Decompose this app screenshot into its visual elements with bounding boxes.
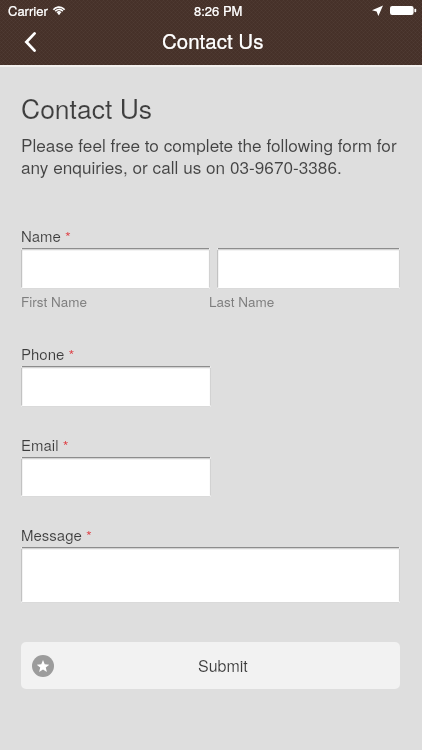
button[interactable] <box>21 457 211 497</box>
staticText: Submit <box>198 654 248 677</box>
button[interactable] <box>217 248 400 289</box>
staticText: Contact Us <box>162 25 264 54</box>
button[interactable]: Back <box>13 26 47 58</box>
staticText: Please feel free to complete the followi… <box>21 132 412 179</box>
staticText: 8:26 PM <box>194 1 243 20</box>
staticText: Email * <box>21 434 69 457</box>
staticText: First Name <box>21 292 87 311</box>
button[interactable] <box>21 366 211 407</box>
staticText: Phone * <box>21 343 75 366</box>
button[interactable]: Submit <box>21 642 400 689</box>
staticText: Message * <box>21 524 92 547</box>
staticText: Carrier <box>8 1 48 20</box>
button[interactable] <box>21 547 400 603</box>
staticText: Name * <box>21 225 71 248</box>
staticText: Last Name <box>209 292 275 311</box>
button[interactable] <box>21 248 210 289</box>
staticText: Contact Us <box>21 89 153 127</box>
